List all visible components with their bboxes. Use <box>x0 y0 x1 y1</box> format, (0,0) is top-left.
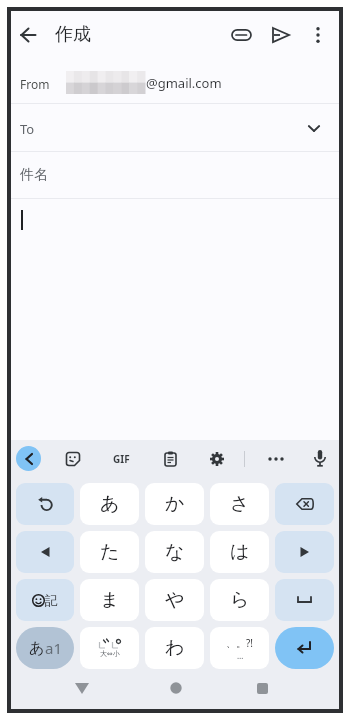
button[interactable]: From <box>11 62 339 103</box>
staticText: は <box>230 540 250 564</box>
staticText: @gmail.com <box>146 74 222 92</box>
staticText: 大⇔小 <box>100 649 120 658</box>
button[interactable]: To <box>11 104 339 151</box>
button[interactable]: あ <box>80 483 139 525</box>
staticText: あ <box>100 492 120 516</box>
button[interactable]: さ <box>210 483 269 525</box>
button[interactable] <box>261 444 290 473</box>
button[interactable]: 記 <box>16 579 74 621</box>
button[interactable] <box>305 444 334 473</box>
staticText: a1 <box>45 638 62 658</box>
button[interactable]: 大⇔小 <box>80 627 139 669</box>
button[interactable] <box>58 444 87 473</box>
button[interactable] <box>156 444 185 473</box>
staticText: あ <box>29 639 45 658</box>
button[interactable] <box>275 579 334 621</box>
button[interactable] <box>275 483 334 525</box>
button[interactable]: は <box>210 531 269 573</box>
button[interactable] <box>302 19 334 51</box>
button[interactable] <box>165 677 187 699</box>
button[interactable]: あ <box>16 627 74 669</box>
button[interactable] <box>16 446 41 471</box>
staticText: た <box>100 540 120 564</box>
staticText: 件名 <box>20 166 48 184</box>
button[interactable]: か <box>145 483 204 525</box>
button[interactable] <box>251 677 273 699</box>
staticText: わ <box>165 636 185 660</box>
staticText: To <box>20 120 35 138</box>
button[interactable]: GIF <box>107 444 136 473</box>
staticText: 、。?! <box>226 636 254 650</box>
button[interactable] <box>226 19 258 51</box>
button[interactable]: 、。?! <box>210 627 269 669</box>
button[interactable]: や <box>145 579 204 621</box>
button[interactable] <box>16 483 74 525</box>
staticText: な <box>165 540 185 564</box>
button[interactable]: ま <box>80 579 139 621</box>
button[interactable]: 件名 <box>11 152 339 198</box>
button[interactable] <box>265 19 297 51</box>
button[interactable]: わ <box>145 627 204 669</box>
button[interactable] <box>12 19 44 51</box>
button[interactable]: な <box>145 531 204 573</box>
staticText: 記 <box>45 592 58 608</box>
staticText: さ <box>230 492 250 516</box>
button[interactable] <box>275 627 334 669</box>
staticText: From <box>20 76 50 92</box>
button[interactable] <box>16 531 74 573</box>
button[interactable] <box>275 531 334 573</box>
staticText: … <box>237 650 244 661</box>
staticText: か <box>165 492 185 516</box>
staticText: GIF <box>113 452 130 466</box>
button[interactable]: た <box>80 531 139 573</box>
button[interactable]: ら <box>210 579 269 621</box>
button[interactable] <box>202 444 231 473</box>
staticText: 作成 <box>55 23 91 46</box>
staticText: ま <box>100 588 120 612</box>
staticText: や <box>165 588 185 612</box>
staticText: ら <box>230 588 250 612</box>
button[interactable] <box>71 677 93 699</box>
